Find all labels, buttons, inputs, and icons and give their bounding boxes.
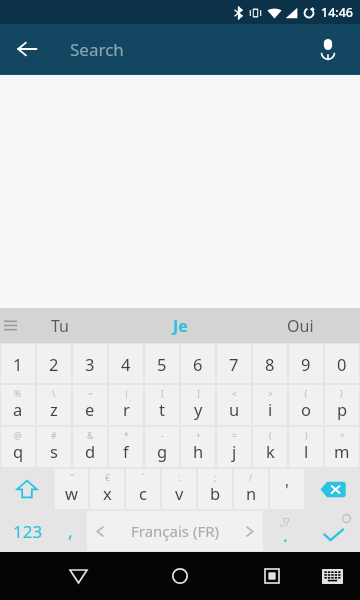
button[interactable]: + (181, 427, 215, 467)
staticText: - (161, 430, 164, 442)
staticText: 0 (337, 353, 347, 375)
staticText: ^ (340, 430, 345, 442)
button[interactable]: # (37, 427, 71, 467)
staticText: e (85, 398, 95, 420)
button[interactable]: ] (181, 385, 215, 425)
button[interactable]: Je (120, 308, 240, 343)
button[interactable]: Delete (305, 468, 360, 510)
button[interactable]: 9 (289, 344, 323, 383)
button[interactable]: Home (156, 552, 204, 600)
button[interactable]: Back (4, 26, 50, 72)
staticText: Oui (287, 315, 314, 337)
button[interactable]: Voice search (306, 27, 350, 71)
button[interactable]: Space, Français (FR) (87, 511, 263, 551)
button[interactable]: [ (145, 385, 179, 425)
staticText: [ (161, 388, 164, 400)
button[interactable]: Oui (240, 308, 360, 343)
staticText: ) (305, 430, 308, 442)
button[interactable]: - (145, 427, 179, 467)
button[interactable]: ' (270, 469, 304, 509)
staticText: \ (52, 388, 56, 400)
button[interactable]: ˜ (55, 469, 88, 509)
staticText: . (283, 523, 288, 548)
button[interactable]: = (217, 427, 251, 467)
button[interactable]: Tu (0, 308, 120, 343)
staticText: j (232, 440, 237, 462)
staticText: w (65, 482, 78, 504)
staticText: 5 (157, 353, 167, 375)
button[interactable]: 4 (109, 344, 143, 383)
staticText: € (105, 472, 110, 484)
staticText: f (123, 440, 129, 462)
button[interactable]: € (90, 469, 124, 509)
staticText: u (229, 398, 240, 420)
staticText: 1 (13, 353, 23, 375)
staticText: < (232, 388, 237, 400)
button[interactable]: 1 (1, 344, 35, 383)
staticText: 123 (13, 520, 43, 543)
button[interactable]: , (55, 510, 86, 552)
button[interactable]: 5 (145, 344, 179, 383)
staticText: h (193, 440, 204, 462)
staticText: > (268, 388, 273, 400)
button[interactable]: / (234, 469, 268, 509)
button[interactable]: ,!? (264, 510, 306, 552)
button[interactable]: ^ (325, 427, 359, 467)
button[interactable]: Enter (306, 510, 360, 552)
staticText: ; (214, 472, 217, 484)
staticText: ,!? (280, 515, 290, 529)
button[interactable]: & (73, 427, 107, 467)
staticText: o (301, 398, 311, 420)
staticText: t (159, 398, 165, 420)
button[interactable]: : (162, 469, 196, 509)
button[interactable]: ´ (126, 469, 160, 509)
staticText: | (124, 388, 129, 400)
staticText: ' (285, 478, 289, 500)
button[interactable]: 123 (0, 510, 55, 552)
staticText: 9 (301, 353, 311, 375)
staticText: ~ (88, 388, 93, 400)
button[interactable]: 7 (217, 344, 251, 383)
staticText: Je (173, 315, 188, 337)
button[interactable]: ~ (73, 385, 107, 425)
staticText: l (304, 440, 309, 462)
button[interactable]: { (289, 385, 323, 425)
staticText: q (13, 440, 24, 462)
button[interactable]: < (217, 385, 251, 425)
staticText: a (13, 398, 23, 420)
button[interactable]: Recent apps (248, 552, 296, 600)
button[interactable]: Shift (0, 468, 54, 510)
staticText: y (194, 398, 203, 420)
button[interactable]: @ (1, 427, 35, 467)
staticText: ´ (142, 472, 145, 484)
button[interactable]: | (109, 385, 143, 425)
button[interactable]: * (109, 427, 143, 467)
button[interactable]: 3 (73, 344, 107, 383)
button[interactable]: 8 (253, 344, 287, 383)
button[interactable]: Switch keyboard (312, 556, 352, 596)
staticText: 3 (85, 353, 95, 375)
button[interactable]: 0 (325, 344, 359, 383)
button[interactable]: ) (289, 427, 323, 467)
button[interactable]: 2 (37, 344, 71, 383)
button[interactable]: ; (198, 469, 232, 509)
button[interactable]: \ (37, 385, 71, 425)
staticText: ( (269, 430, 272, 442)
staticText: 14:46 (321, 4, 354, 21)
staticText: % (14, 388, 22, 400)
button[interactable]: Search (70, 24, 304, 74)
button[interactable]: } (325, 385, 359, 425)
staticText: x (103, 482, 112, 504)
button[interactable]: Back (54, 552, 102, 600)
staticText: 8 (265, 353, 275, 375)
staticText: s (50, 440, 58, 462)
button[interactable]: % (1, 385, 35, 425)
staticText: & (87, 430, 94, 442)
staticText: Français (FR) (131, 521, 220, 541)
staticText: / (249, 472, 253, 484)
button[interactable]: > (253, 385, 287, 425)
button[interactable]: ( (253, 427, 287, 467)
button[interactable]: More suggestions (0, 308, 20, 343)
staticText: Tu (51, 315, 69, 337)
button[interactable]: 6 (181, 344, 215, 383)
